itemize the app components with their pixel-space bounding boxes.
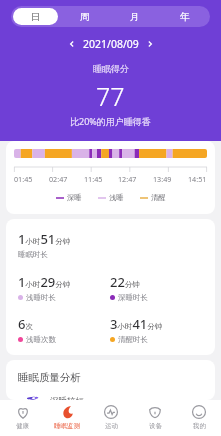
staticText: 周: [80, 11, 90, 23]
staticText: 深睡较短: [50, 396, 84, 400]
staticText: 比20%的用户睡得香: [70, 115, 151, 127]
staticText: 睡眠得分: [93, 63, 129, 74]
staticText: 健康: [16, 422, 29, 430]
button[interactable]: 健康: [0, 400, 45, 436]
staticText: 睡眠监测: [54, 422, 80, 430]
staticText: 02:47: [49, 174, 68, 184]
staticText: 深睡时长: [118, 293, 148, 302]
staticText: 12:47: [118, 174, 137, 184]
staticText: 运动: [105, 422, 118, 430]
staticText: 77: [96, 79, 125, 113]
button[interactable]: 日: [13, 8, 58, 25]
staticText: 11:45: [84, 174, 103, 184]
staticText: 浅睡时长: [26, 293, 56, 302]
staticText: 清醒时长: [118, 335, 148, 344]
staticText: 月: [130, 11, 140, 23]
button[interactable]: 运动: [89, 400, 133, 436]
button[interactable]: Previous day: [64, 36, 80, 52]
staticText: 浅睡次数: [26, 335, 56, 344]
staticText: 设备: [149, 422, 162, 430]
staticText: 日: [31, 11, 41, 23]
staticText: 浅睡: [109, 193, 124, 202]
staticText: 深睡: [67, 193, 82, 202]
staticText: 1小时51分钟: [18, 230, 71, 248]
button[interactable]: Next day: [142, 36, 158, 52]
staticText: 2021/08/09: [83, 37, 139, 51]
staticText: 睡眠时长: [18, 250, 48, 259]
staticText: 清醒: [151, 193, 166, 202]
button[interactable]: 设备: [133, 400, 177, 436]
staticText: 睡眠质量分析: [18, 371, 81, 384]
staticText: 年: [180, 11, 190, 23]
staticText: 我的: [193, 422, 206, 430]
staticText: 01:45: [14, 174, 33, 184]
button[interactable]: 周: [62, 8, 108, 25]
staticText: 1小时29分钟: [18, 273, 71, 291]
button[interactable]: 年: [162, 8, 208, 25]
button[interactable]: 睡眠监测: [45, 400, 89, 436]
staticText: 13:49: [153, 174, 172, 184]
staticText: 6次: [18, 315, 33, 333]
button[interactable]: 月: [112, 8, 158, 25]
staticText: 14:51: [188, 174, 207, 184]
button[interactable]: 我的: [177, 400, 221, 436]
staticText: 3小时41分钟: [110, 315, 163, 333]
staticText: 22分钟: [110, 273, 140, 291]
